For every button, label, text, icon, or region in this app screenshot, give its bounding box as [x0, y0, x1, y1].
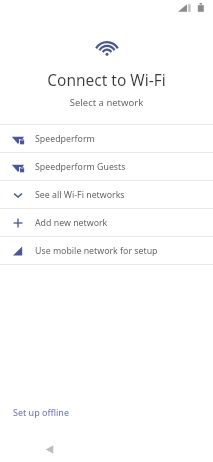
staticText: Set up offline [13, 406, 69, 418]
staticText: Speedperform Guests [35, 161, 126, 173]
button[interactable]: Back [38, 438, 60, 460]
staticText: Connect to Wi-Fi [0, 69, 213, 90]
button[interactable]: See all Wi-Fi networks [0, 181, 213, 208]
staticText: Use mobile network for setup [35, 245, 158, 257]
staticText: Add new network [35, 217, 108, 229]
staticText: See all Wi-Fi networks [35, 189, 125, 201]
button[interactable]: Speedperform Guests [0, 153, 213, 180]
staticText: Speedperform [35, 133, 95, 145]
button[interactable]: Set up offline [0, 400, 82, 424]
staticText: Select a network [0, 96, 213, 109]
button[interactable]: Add new network [0, 209, 213, 236]
button[interactable]: Speedperform [0, 125, 213, 152]
button[interactable]: Use mobile network for setup [0, 237, 213, 264]
